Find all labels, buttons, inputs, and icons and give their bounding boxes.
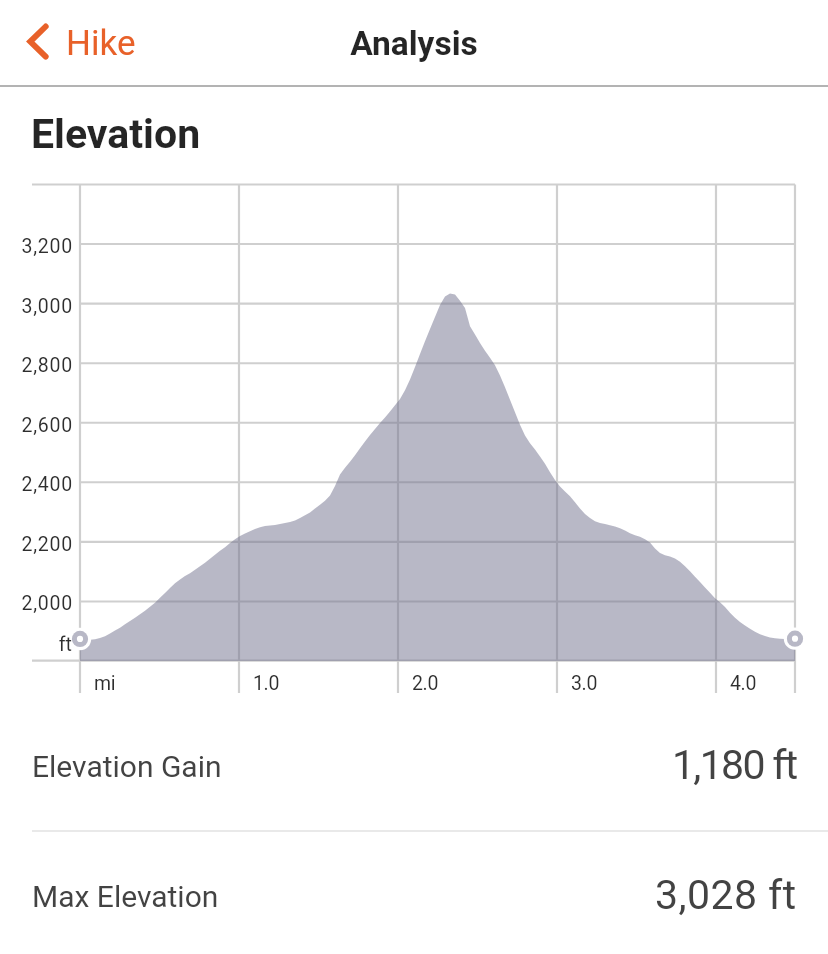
- staticText: 3,000: [2, 295, 73, 318]
- staticText: mi: [94, 672, 116, 695]
- staticText: Elevation: [31, 110, 201, 158]
- staticText: 2.0: [412, 672, 439, 695]
- staticText: Hike: [66, 23, 136, 64]
- staticText: 2,600: [2, 414, 73, 437]
- staticText: ft: [0, 633, 72, 656]
- staticText: 1,180 ft: [672, 741, 797, 789]
- button[interactable]: Max Elevation: [0, 847, 828, 943]
- staticText: 2,200: [2, 533, 73, 556]
- button[interactable]: Elevation Gain: [0, 717, 828, 813]
- staticText: 3,028 ft: [655, 871, 797, 919]
- staticText: 2,400: [2, 473, 73, 496]
- staticText: 2,000: [2, 592, 73, 615]
- staticText: Elevation Gain: [32, 749, 222, 784]
- staticText: 3,200: [2, 235, 73, 258]
- staticText: Analysis: [0, 24, 828, 63]
- staticText: 1.0: [253, 672, 280, 695]
- button[interactable]: Back to Hike: [14, 6, 144, 80]
- staticText: 2,800: [2, 354, 73, 377]
- staticText: 4.0: [730, 672, 757, 695]
- staticText: Max Elevation: [32, 879, 219, 914]
- staticText: 3.0: [571, 672, 598, 695]
